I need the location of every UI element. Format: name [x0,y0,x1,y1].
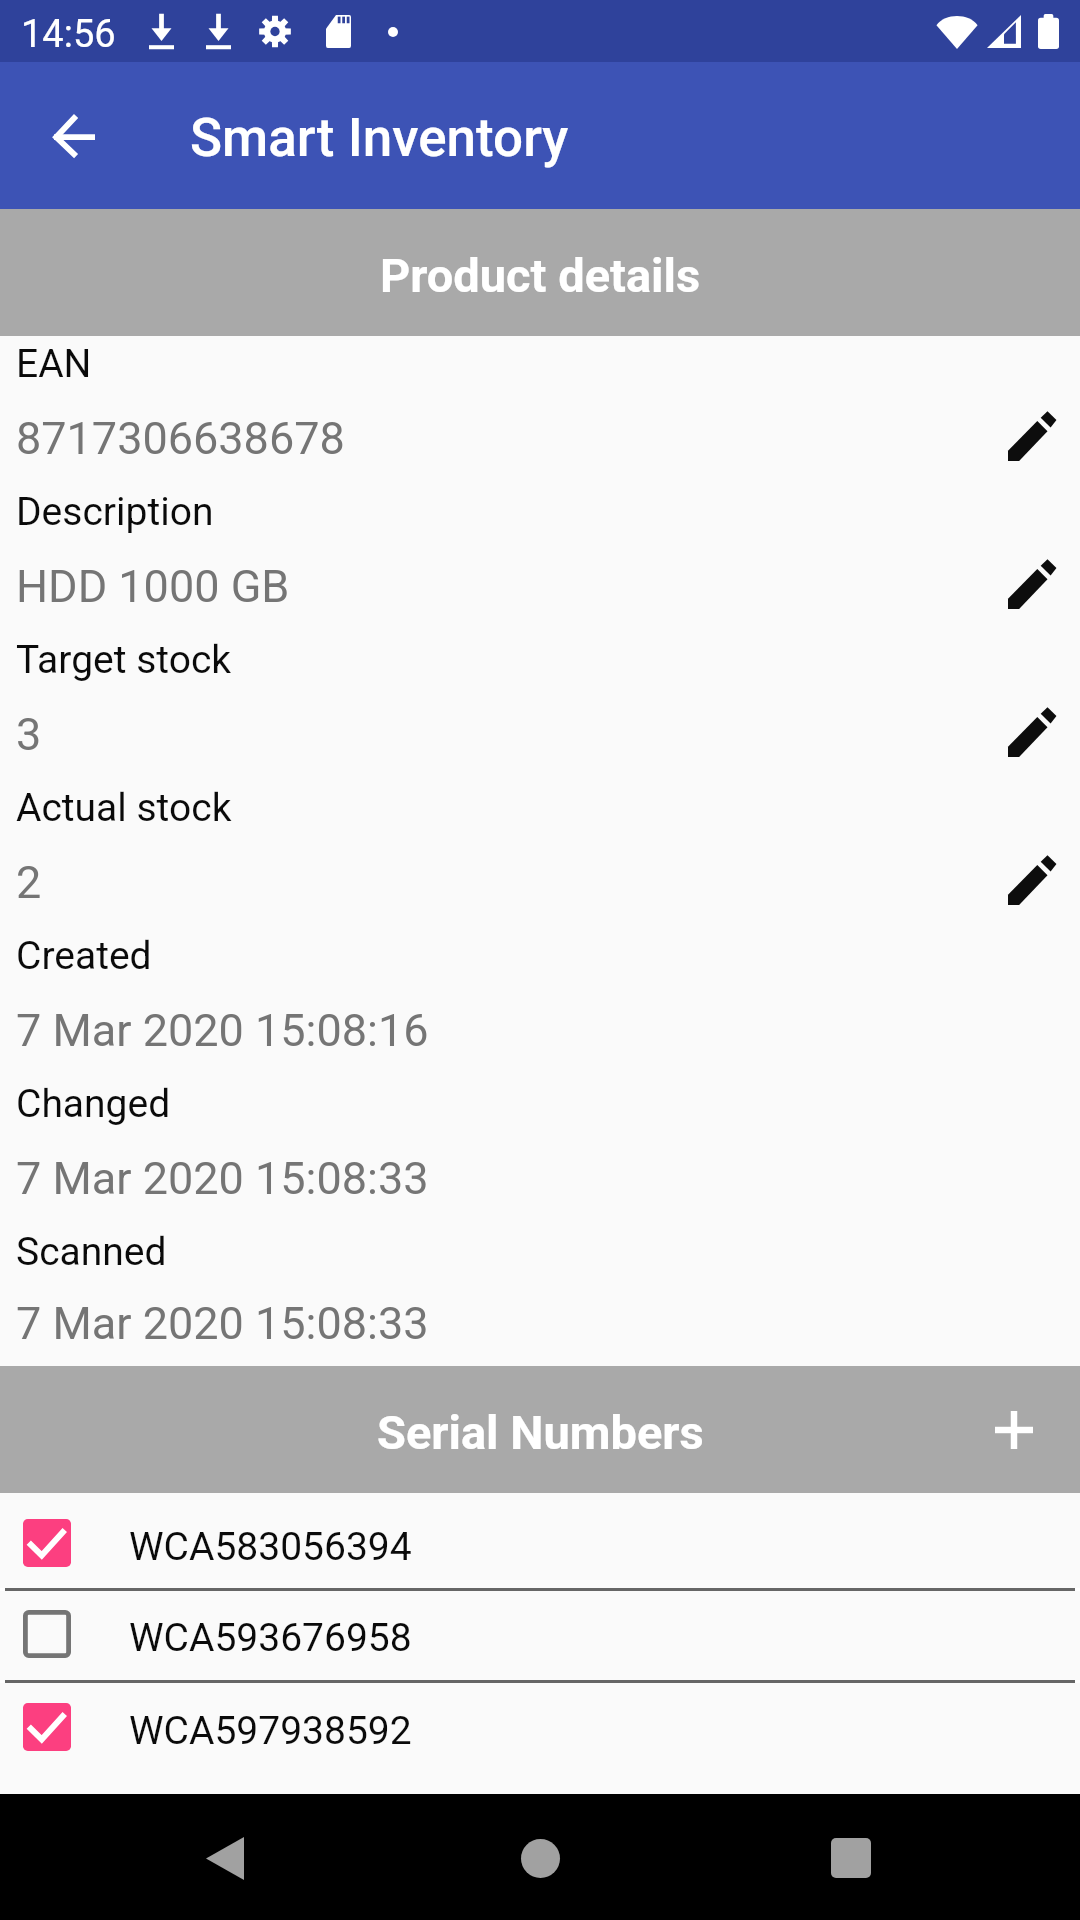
staticText: EAN [16,341,92,387]
button[interactable]: Navigate up [28,91,118,181]
staticText: Scanned [16,1229,167,1275]
button[interactable]: Edit EAN [993,399,1073,473]
staticText: 7 Mar 2020 15:08:16 [16,1004,429,1057]
button[interactable]: Back [180,1813,270,1903]
button[interactable]: Edit Target stock [993,695,1073,769]
staticText: Serial Numbers [377,1405,704,1460]
staticText: Actual stock [16,785,232,831]
button[interactable]: Add serial number [970,1386,1058,1474]
staticText: 7 Mar 2020 15:08:33 [16,1152,429,1205]
staticText: 14:56 [21,12,116,57]
staticText: Description [16,489,214,535]
staticText: WCA593676958 [129,1615,412,1661]
staticText: 2 [16,856,42,909]
button[interactable]: WCA597938592 [0,1683,1080,1775]
staticText: WCA597938592 [129,1708,412,1754]
staticText: Smart Inventory [190,107,569,169]
button[interactable]: Edit Description [993,547,1073,621]
button[interactable]: WCA583056394 [0,1496,1080,1588]
staticText: 7 Mar 2020 15:08:33 [16,1297,429,1350]
button[interactable]: WCA593676958 [0,1591,1080,1680]
staticText: Product details [380,248,701,303]
staticText: HDD 1000 GB [16,560,290,613]
staticText: 3 [16,708,42,761]
staticText: Target stock [16,637,232,683]
staticText: 8717306638678 [16,412,345,465]
button[interactable]: Home [495,1813,585,1903]
staticText: WCA583056394 [129,1524,412,1570]
button[interactable]: Recent apps [806,1813,896,1903]
button[interactable]: Edit Actual stock [993,843,1073,917]
staticText: Created [16,933,152,979]
staticText: Changed [16,1081,171,1127]
